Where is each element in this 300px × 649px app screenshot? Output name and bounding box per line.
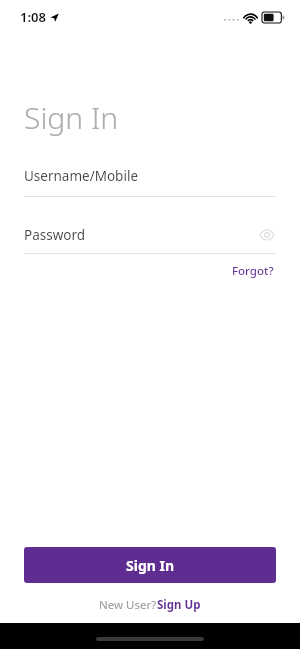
- staticText: Username/Mobile: [24, 167, 138, 185]
- button[interactable]: Username/Mobile: [24, 167, 276, 197]
- staticText: Password: [24, 226, 86, 244]
- staticText: New User?: [99, 597, 157, 613]
- button[interactable]: Sign Up: [157, 597, 201, 613]
- staticText: Sign Up: [157, 597, 201, 613]
- staticText: Sign In: [126, 556, 175, 575]
- button[interactable]: Forgot?: [230, 260, 276, 282]
- button[interactable]: Password: [24, 226, 276, 244]
- button[interactable]: Sign In: [24, 547, 276, 583]
- staticText: Forgot?: [232, 263, 274, 279]
- button[interactable]: Show password: [258, 226, 276, 244]
- staticText: 1:08: [20, 8, 46, 26]
- staticText: Sign In: [24, 97, 119, 138]
